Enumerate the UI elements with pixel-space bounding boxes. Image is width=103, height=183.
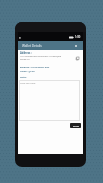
staticText: Note :: [20, 75, 28, 78]
staticText: 1LrcTSMwZu5WVqLs6k9TF1cNwpQmp 3fG9a7H: [20, 55, 72, 61]
staticText: Value : $4.32: [20, 69, 35, 72]
button[interactable]: Copy address: [73, 54, 81, 62]
staticText: Address :: [20, 51, 32, 55]
staticText: SAVE: [73, 124, 79, 127]
staticText: Wallet Details: [22, 44, 42, 48]
button[interactable]: SAVE: [70, 123, 81, 128]
staticText: Balance : 0.01234567 BTC: [20, 65, 50, 68]
staticText: Type the note: [20, 81, 36, 84]
staticText: 1:00: [75, 35, 81, 39]
button[interactable]: Type the note: [19, 80, 80, 121]
button[interactable]: Close: [72, 42, 80, 50]
